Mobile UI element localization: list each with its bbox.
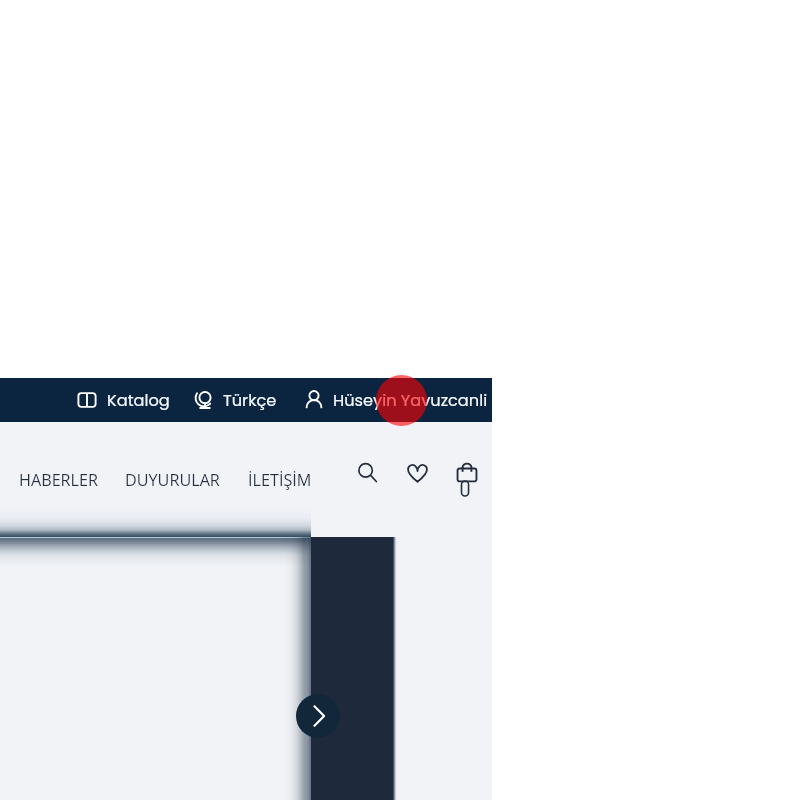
staticText: Hüseyin Yavuzcanli [333, 389, 488, 412]
staticText: İLETİŞİM [248, 469, 312, 491]
staticText: HABERLER [19, 469, 99, 491]
button[interactable]: HABERLER [7, 452, 111, 508]
button[interactable]: Hüseyin Yavuzcanli [296, 378, 496, 422]
button[interactable]: Next [296, 694, 340, 738]
button[interactable]: İLETİŞİM [236, 452, 324, 508]
staticText: Türkçe [223, 389, 277, 412]
button[interactable]: DUYURULAR [113, 452, 232, 508]
button[interactable]: Cart [447, 460, 487, 500]
staticText: Katalog [107, 389, 170, 412]
button[interactable]: Favorites [397, 453, 437, 493]
button[interactable]: Search [347, 452, 387, 492]
button[interactable]: Katalog [69, 378, 178, 422]
button[interactable]: Türkçe [186, 378, 285, 422]
staticText: DUYURULAR [125, 469, 220, 491]
